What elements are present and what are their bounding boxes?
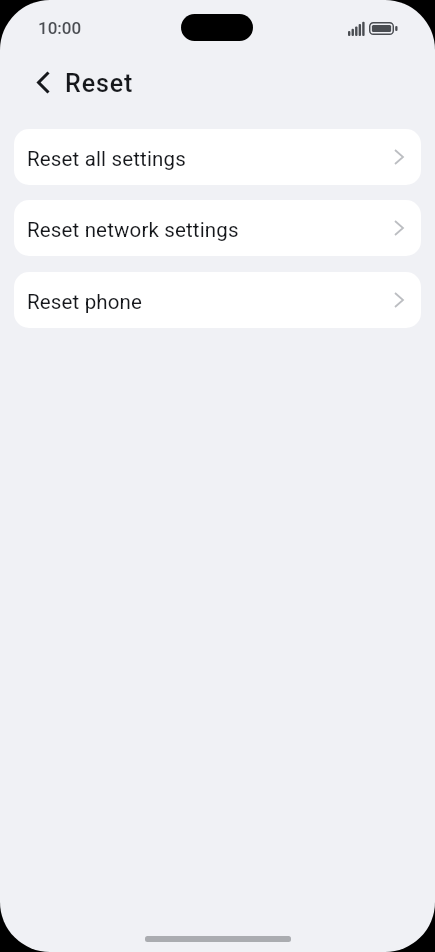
staticText: 10:00	[38, 18, 82, 38]
button[interactable]: Reset network settings	[14, 200, 421, 256]
button[interactable]: Reset phone	[14, 272, 421, 328]
button[interactable]: Reset all settings	[14, 129, 421, 185]
staticText: Reset phone	[27, 290, 143, 314]
staticText: Reset network settings	[27, 218, 239, 242]
staticText: Reset all settings	[27, 147, 186, 171]
staticText: Reset	[65, 69, 134, 98]
button[interactable]: Back	[22, 65, 64, 99]
